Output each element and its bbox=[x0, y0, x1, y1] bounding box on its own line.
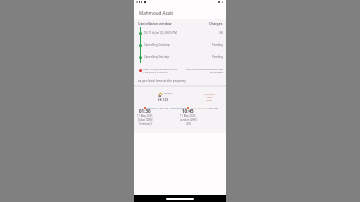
staticText: Non Stop bbox=[207, 106, 218, 109]
staticText: Economy bbox=[204, 92, 215, 95]
staticText: Mahmoud Azab bbox=[139, 10, 174, 16]
staticText: Dubai (DXB) bbox=[138, 118, 153, 122]
staticText: London (LHR) bbox=[180, 118, 197, 122]
staticText: Emirates bbox=[164, 92, 172, 95]
staticText: Terminal 3 bbox=[139, 122, 152, 126]
staticText: Cancelling 2nd step bbox=[144, 43, 212, 47]
staticText: 11 May 2025 bbox=[180, 114, 196, 118]
staticText: 01:30 bbox=[139, 108, 151, 114]
staticText: Cancellation window bbox=[138, 21, 172, 26]
staticText: Cancelling 3rd step bbox=[144, 55, 212, 59]
staticText: EK 123 bbox=[158, 98, 169, 102]
staticText: 10:45 bbox=[182, 108, 194, 114]
staticText: Pending bbox=[212, 55, 223, 59]
staticText: Nil bbox=[219, 31, 223, 35]
staticText: 100% of the booking amount will be charg… bbox=[183, 67, 223, 74]
staticText: From 11th Jun'25 08:05 PM till 14th Jun'… bbox=[143, 67, 183, 74]
staticText: 14h 15m bbox=[158, 106, 169, 109]
staticText: Till 11th Jun'25, 08:05 PM bbox=[144, 31, 219, 35]
staticText: Saver bbox=[206, 95, 213, 98]
staticText: 11 May 2025 bbox=[137, 114, 153, 118]
staticText: (L8B) bbox=[206, 98, 212, 101]
staticText: LHR bbox=[186, 122, 191, 126]
staticText: as per local time at the property bbox=[138, 79, 186, 83]
staticText: Pending bbox=[212, 43, 223, 47]
staticText: Charges bbox=[209, 21, 223, 26]
